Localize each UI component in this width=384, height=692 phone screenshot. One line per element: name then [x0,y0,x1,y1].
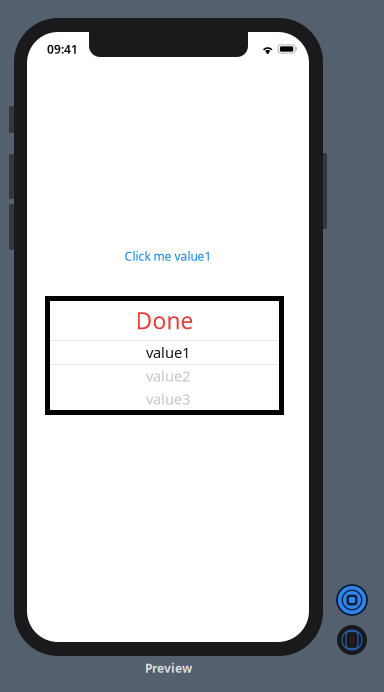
button[interactable]: Live Preview [336,584,368,616]
staticText: Click me value1 [124,248,211,264]
button[interactable]: Click me value1 [27,246,309,266]
staticText: Done [135,305,193,335]
staticText: value2 [146,366,190,385]
button[interactable]: value1 [53,340,282,364]
staticText: 09:41 [47,41,78,57]
button[interactable]: Preview on Device [337,625,367,655]
button[interactable]: value3 [53,387,282,410]
staticText: Preview [145,660,192,676]
button[interactable]: Done [50,301,279,340]
button[interactable]: value2 [53,364,282,387]
staticText: value3 [146,389,190,408]
staticText: value1 [146,342,190,362]
